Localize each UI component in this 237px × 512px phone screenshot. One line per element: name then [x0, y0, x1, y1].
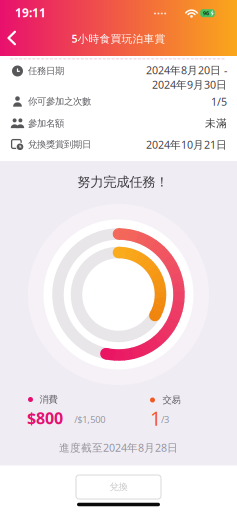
- staticText: 參加名額: [28, 118, 64, 129]
- button[interactable]: 兌換: [76, 475, 161, 499]
- staticText: 你可參加之次數: [28, 96, 91, 107]
- staticText: $800: [27, 407, 63, 429]
- staticText: 交易: [162, 394, 180, 406]
- staticText: 任務日期: [28, 65, 64, 77]
- staticText: 2024年8月20日 -: [146, 63, 227, 77]
- staticText: 96: [203, 10, 209, 17]
- staticText: 1: [150, 405, 161, 431]
- staticText: 5小時食買玩泊車賞: [71, 31, 165, 46]
- staticText: 19:11: [15, 4, 46, 20]
- button[interactable]: Back: [2, 28, 22, 48]
- staticText: 2024年9月30日: [152, 77, 227, 92]
- staticText: /3: [161, 413, 169, 426]
- staticText: 未滿: [205, 117, 227, 130]
- staticText: 努力完成任務！: [77, 174, 168, 190]
- staticText: 兌換獎賞到期日: [28, 139, 91, 150]
- staticText: 1/5: [211, 94, 227, 109]
- staticText: 消費: [39, 394, 57, 405]
- staticText: 2024年10月21日: [146, 137, 227, 152]
- staticText: 兌換: [109, 481, 127, 493]
- staticText: /$1,500: [74, 413, 105, 426]
- staticText: 進度截至2024年8月28日: [59, 440, 178, 455]
